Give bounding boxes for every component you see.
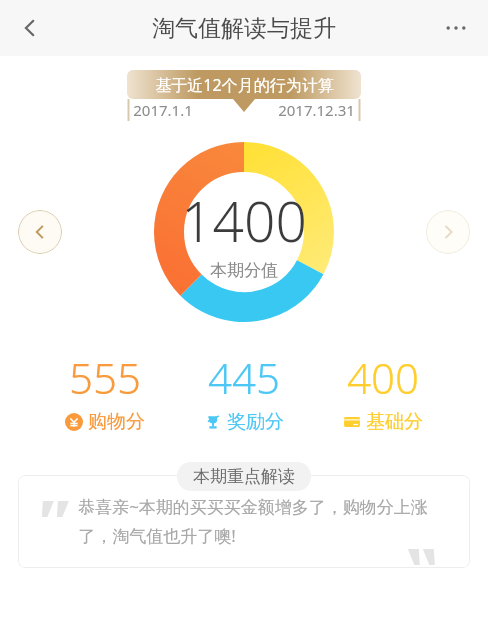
button[interactable]: Back xyxy=(6,4,54,52)
staticText: 400 xyxy=(347,349,419,406)
staticText: 445 xyxy=(208,349,280,406)
staticText: 本期重点解读 xyxy=(193,466,295,487)
button[interactable]: Next period xyxy=(426,210,470,254)
staticText: 购物分 xyxy=(88,410,145,434)
staticText: 基于近12个月的行为计算 xyxy=(155,74,334,96)
button[interactable]: Previous period xyxy=(18,210,62,254)
staticText: 555 xyxy=(69,349,141,406)
staticText: 1400 xyxy=(181,183,307,258)
staticText: 恭喜亲~本期的买买买金额增多了，购物分上涨 xyxy=(78,495,428,518)
staticText: 2017.12.31 xyxy=(278,100,355,120)
button[interactable]: 445 xyxy=(198,349,290,434)
button[interactable]: 555 xyxy=(59,349,151,434)
staticText: 了，淘气值也升了噢! xyxy=(78,524,236,547)
button[interactable]: 恭喜亲~本期的买买买金额增多了，购物分上涨 xyxy=(18,475,470,568)
button[interactable]: More options xyxy=(432,4,480,52)
button[interactable]: 400 xyxy=(337,349,429,434)
button[interactable]: 本期重点解读 xyxy=(177,462,311,491)
staticText: 基础分 xyxy=(366,410,423,434)
staticText: 淘气值解读与提升 xyxy=(152,14,336,43)
staticText: 奖励分 xyxy=(227,410,284,434)
staticText: 2017.1.1 xyxy=(133,100,193,120)
staticText: 本期分值 xyxy=(210,260,278,281)
